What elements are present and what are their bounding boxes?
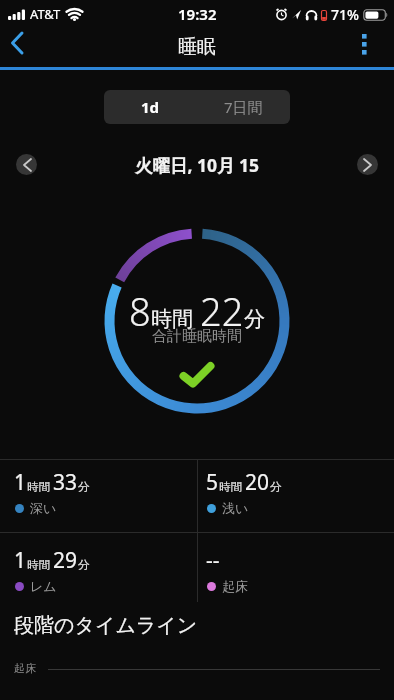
- staticText: 合計睡眠時間: [152, 327, 242, 346]
- staticText: 1d: [141, 97, 160, 117]
- staticText: 19:32: [178, 4, 217, 24]
- staticText: 8: [129, 285, 151, 337]
- staticText: 1: [14, 546, 27, 575]
- button[interactable]: 1d: [104, 90, 197, 124]
- button[interactable]: 1: [14, 468, 90, 516]
- staticText: 深い: [30, 500, 57, 516]
- staticText: 時間: [27, 558, 50, 572]
- staticText: レム: [30, 578, 57, 594]
- staticText: 33: [53, 468, 78, 497]
- staticText: 分: [270, 480, 282, 494]
- button[interactable]: 1: [14, 546, 90, 594]
- staticText: 時間: [151, 306, 193, 332]
- staticText: 睡眠: [178, 35, 216, 59]
- button[interactable]: [16, 154, 37, 175]
- staticText: 起床: [14, 661, 36, 675]
- staticText: 29: [53, 546, 78, 575]
- staticText: 浅い: [222, 500, 249, 516]
- button[interactable]: [357, 154, 378, 175]
- staticText: 火曜日, 10月 15: [135, 153, 260, 177]
- staticText: 時間: [27, 480, 50, 494]
- button[interactable]: --: [206, 546, 248, 594]
- staticText: 22: [200, 285, 244, 337]
- staticText: 5: [206, 468, 219, 497]
- staticText: 20: [245, 468, 270, 497]
- staticText: --: [206, 546, 220, 575]
- staticText: 7日間: [224, 97, 263, 117]
- button[interactable]: [0, 28, 40, 62]
- staticText: 分: [244, 306, 265, 332]
- staticText: 起床: [222, 578, 248, 594]
- button[interactable]: 5: [206, 468, 282, 516]
- staticText: 1: [14, 468, 27, 497]
- staticText: 71%: [331, 5, 359, 24]
- staticText: 段階のタイムライン: [14, 613, 198, 638]
- button[interactable]: [350, 28, 394, 66]
- staticText: AT&T: [30, 5, 61, 23]
- staticText: 時間: [219, 480, 242, 494]
- staticText: 分: [78, 558, 90, 572]
- staticText: 分: [78, 480, 90, 494]
- button[interactable]: 7日間: [197, 90, 290, 124]
